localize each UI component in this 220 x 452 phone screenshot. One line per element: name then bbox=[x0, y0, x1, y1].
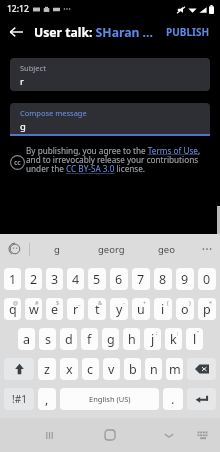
staticText: 1 bbox=[9, 271, 17, 288]
button[interactable]: Enter bbox=[187, 388, 216, 410]
staticText: q bbox=[9, 301, 17, 318]
button[interactable]: o bbox=[176, 298, 194, 320]
button[interactable]: m bbox=[166, 358, 183, 380]
button[interactable]: 0 bbox=[198, 268, 216, 290]
button[interactable]: d bbox=[60, 328, 77, 350]
button[interactable]: Emoji bbox=[0, 234, 29, 264]
button[interactable]: Home bbox=[95, 420, 125, 450]
button[interactable]: Backspace bbox=[187, 358, 216, 380]
staticText: p bbox=[203, 301, 211, 318]
button[interactable]: c bbox=[82, 358, 99, 380]
button[interactable]: 3 bbox=[46, 268, 63, 290]
button[interactable]: English (US) bbox=[60, 388, 159, 410]
button[interactable]: g bbox=[102, 328, 119, 350]
staticText: geo bbox=[158, 243, 175, 256]
staticText: - bbox=[123, 299, 125, 306]
staticText: cc bbox=[14, 158, 21, 167]
staticText: l bbox=[193, 331, 197, 348]
staticText: !#1 bbox=[12, 392, 27, 406]
button[interactable]: n bbox=[145, 358, 162, 380]
staticText: e bbox=[51, 301, 59, 318]
button[interactable]: l bbox=[186, 328, 203, 350]
button[interactable]: k bbox=[165, 328, 182, 350]
button[interactable]: PUBLISH bbox=[161, 18, 220, 46]
button[interactable]: Change keyboard bbox=[189, 422, 215, 448]
staticText: 0 bbox=[203, 271, 211, 288]
staticText: _ bbox=[78, 299, 81, 306]
staticText: b bbox=[129, 361, 137, 378]
staticText: h bbox=[128, 331, 136, 348]
button[interactable]: g bbox=[30, 234, 84, 264]
staticText: ) bbox=[189, 299, 191, 306]
button[interactable]: 1 bbox=[4, 268, 21, 290]
staticText: PUBLISH bbox=[166, 25, 210, 39]
button[interactable]: 6 bbox=[110, 268, 128, 290]
button[interactable]: georg bbox=[84, 234, 139, 264]
staticText: 6 bbox=[115, 271, 123, 288]
staticText: 7 bbox=[137, 271, 145, 288]
button[interactable]: p bbox=[198, 298, 216, 320]
button[interactable]: w bbox=[25, 298, 42, 320]
button[interactable]: y bbox=[110, 298, 128, 320]
other: Backspace bbox=[195, 364, 209, 374]
staticText: s bbox=[45, 331, 51, 348]
button[interactable]: h bbox=[123, 328, 140, 350]
staticText: m bbox=[169, 361, 181, 378]
button[interactable]: z bbox=[38, 358, 56, 380]
staticText: 8 bbox=[159, 271, 167, 288]
button[interactable]: . bbox=[163, 388, 183, 410]
staticText: g bbox=[20, 120, 26, 133]
button[interactable]: j bbox=[144, 328, 161, 350]
staticText: z bbox=[44, 361, 50, 378]
button[interactable]: , bbox=[38, 388, 56, 410]
button[interactable]: u bbox=[132, 298, 150, 320]
button[interactable]: Hide keyboard bbox=[154, 420, 184, 450]
button[interactable]: 2 bbox=[25, 268, 42, 290]
button[interactable]: r bbox=[67, 298, 84, 320]
button[interactable]: !#1 bbox=[4, 388, 34, 410]
staticText: t bbox=[95, 301, 100, 318]
button[interactable]: 4 bbox=[67, 268, 84, 290]
button[interactable]: e bbox=[46, 298, 63, 320]
staticText: + bbox=[143, 299, 147, 306]
button[interactable]: Back bbox=[0, 18, 31, 46]
button[interactable]: geo bbox=[139, 234, 194, 264]
staticText: 2 bbox=[30, 271, 38, 288]
button[interactable]: i bbox=[154, 298, 172, 320]
button[interactable]: 9 bbox=[176, 268, 194, 290]
staticText: g bbox=[54, 243, 60, 256]
staticText: @ bbox=[13, 299, 18, 306]
staticText: . bbox=[171, 391, 175, 408]
staticText: # bbox=[35, 299, 39, 306]
button[interactable]: f bbox=[81, 328, 98, 350]
button[interactable]: Subject bbox=[10, 58, 210, 91]
staticText: 12:12 bbox=[7, 3, 29, 15]
staticText: r bbox=[73, 301, 79, 318]
button[interactable]: More suggestions bbox=[194, 234, 220, 264]
staticText: d bbox=[65, 331, 73, 348]
staticText: By publishing, you agree to the Terms of… bbox=[26, 145, 205, 175]
staticText: g bbox=[107, 331, 115, 348]
button[interactable]: q bbox=[4, 298, 21, 320]
staticText: w bbox=[29, 301, 39, 318]
staticText: 5 bbox=[93, 271, 101, 288]
button[interactable]: 7 bbox=[132, 268, 150, 290]
staticText: User talk: SHaran ... bbox=[34, 24, 161, 41]
button[interactable]: Compose message bbox=[10, 103, 210, 134]
button[interactable]: x bbox=[60, 358, 78, 380]
button[interactable]: v bbox=[103, 358, 120, 380]
button[interactable]: s bbox=[39, 328, 56, 350]
button[interactable]: 5 bbox=[88, 268, 106, 290]
button[interactable]: Shift bbox=[4, 358, 34, 380]
staticText: v bbox=[108, 361, 115, 378]
button[interactable]: Recents bbox=[34, 420, 64, 450]
staticText: , bbox=[45, 391, 49, 408]
staticText: $ bbox=[56, 299, 60, 306]
button[interactable]: 8 bbox=[154, 268, 172, 290]
button[interactable]: t bbox=[88, 298, 106, 320]
staticText: c bbox=[87, 361, 94, 378]
staticText: a bbox=[23, 331, 31, 348]
button[interactable]: a bbox=[18, 328, 35, 350]
button[interactable]: b bbox=[124, 358, 141, 380]
staticText: f bbox=[87, 331, 92, 348]
